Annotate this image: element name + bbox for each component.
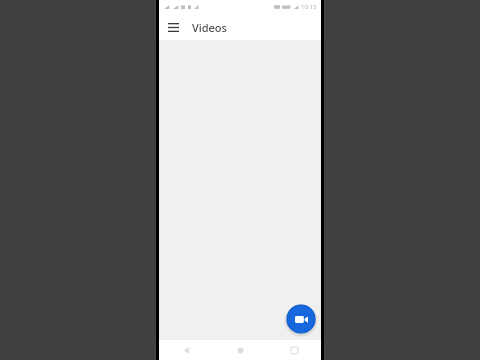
staticText: 10:13 [301, 3, 317, 11]
button[interactable]: Record a video [283, 301, 319, 337]
button[interactable]: Back [174, 340, 198, 360]
button[interactable]: Recent apps [282, 340, 306, 360]
staticText: Videos [192, 20, 227, 35]
button[interactable]: Home [228, 340, 252, 360]
button[interactable]: Open navigation menu [164, 18, 182, 36]
